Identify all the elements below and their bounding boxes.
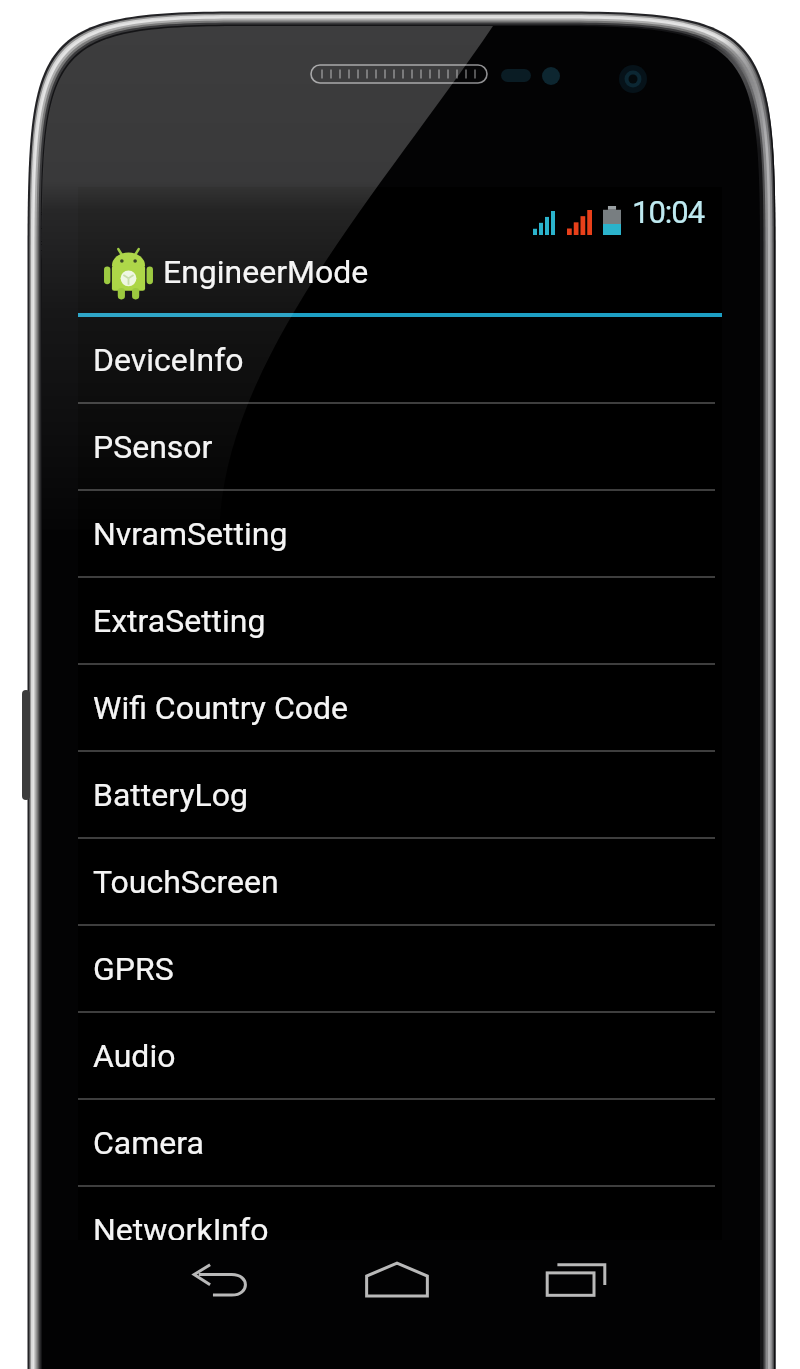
button[interactable]: PSensor xyxy=(78,404,722,491)
button[interactable]: NetworkInfo xyxy=(78,1187,722,1274)
button[interactable]: BatteryLog xyxy=(78,752,722,839)
staticText: NetworkInfo xyxy=(93,1211,269,1249)
staticText: Audio xyxy=(93,1037,176,1075)
button[interactable]: GPRS xyxy=(78,926,722,1013)
staticText: EngineerMode xyxy=(163,253,369,291)
button[interactable]: Camera xyxy=(78,1100,722,1187)
staticText: Camera xyxy=(93,1124,204,1162)
staticText: DeviceInfo xyxy=(93,341,244,379)
button[interactable]: ExtraSetting xyxy=(78,578,722,665)
button[interactable]: Audio xyxy=(78,1013,722,1100)
button[interactable]: TouchScreen xyxy=(78,839,722,926)
button[interactable]: Recent apps xyxy=(535,1249,617,1309)
staticText: 10:04 xyxy=(632,194,705,230)
staticText: ExtraSetting xyxy=(93,602,266,640)
staticText: BatteryLog xyxy=(93,776,248,814)
staticText: TouchScreen xyxy=(93,863,279,901)
button[interactable]: Wifi Country Code xyxy=(78,665,722,752)
button[interactable]: DeviceInfo xyxy=(78,317,722,404)
staticText: Wifi Country Code xyxy=(93,689,348,727)
staticText: GPRS xyxy=(93,950,174,988)
staticText: PSensor xyxy=(93,428,213,466)
button[interactable]: Home xyxy=(352,1249,442,1309)
button[interactable]: NvramSetting xyxy=(78,491,722,578)
staticText: NvramSetting xyxy=(93,515,288,553)
button[interactable]: Back xyxy=(182,1250,260,1310)
